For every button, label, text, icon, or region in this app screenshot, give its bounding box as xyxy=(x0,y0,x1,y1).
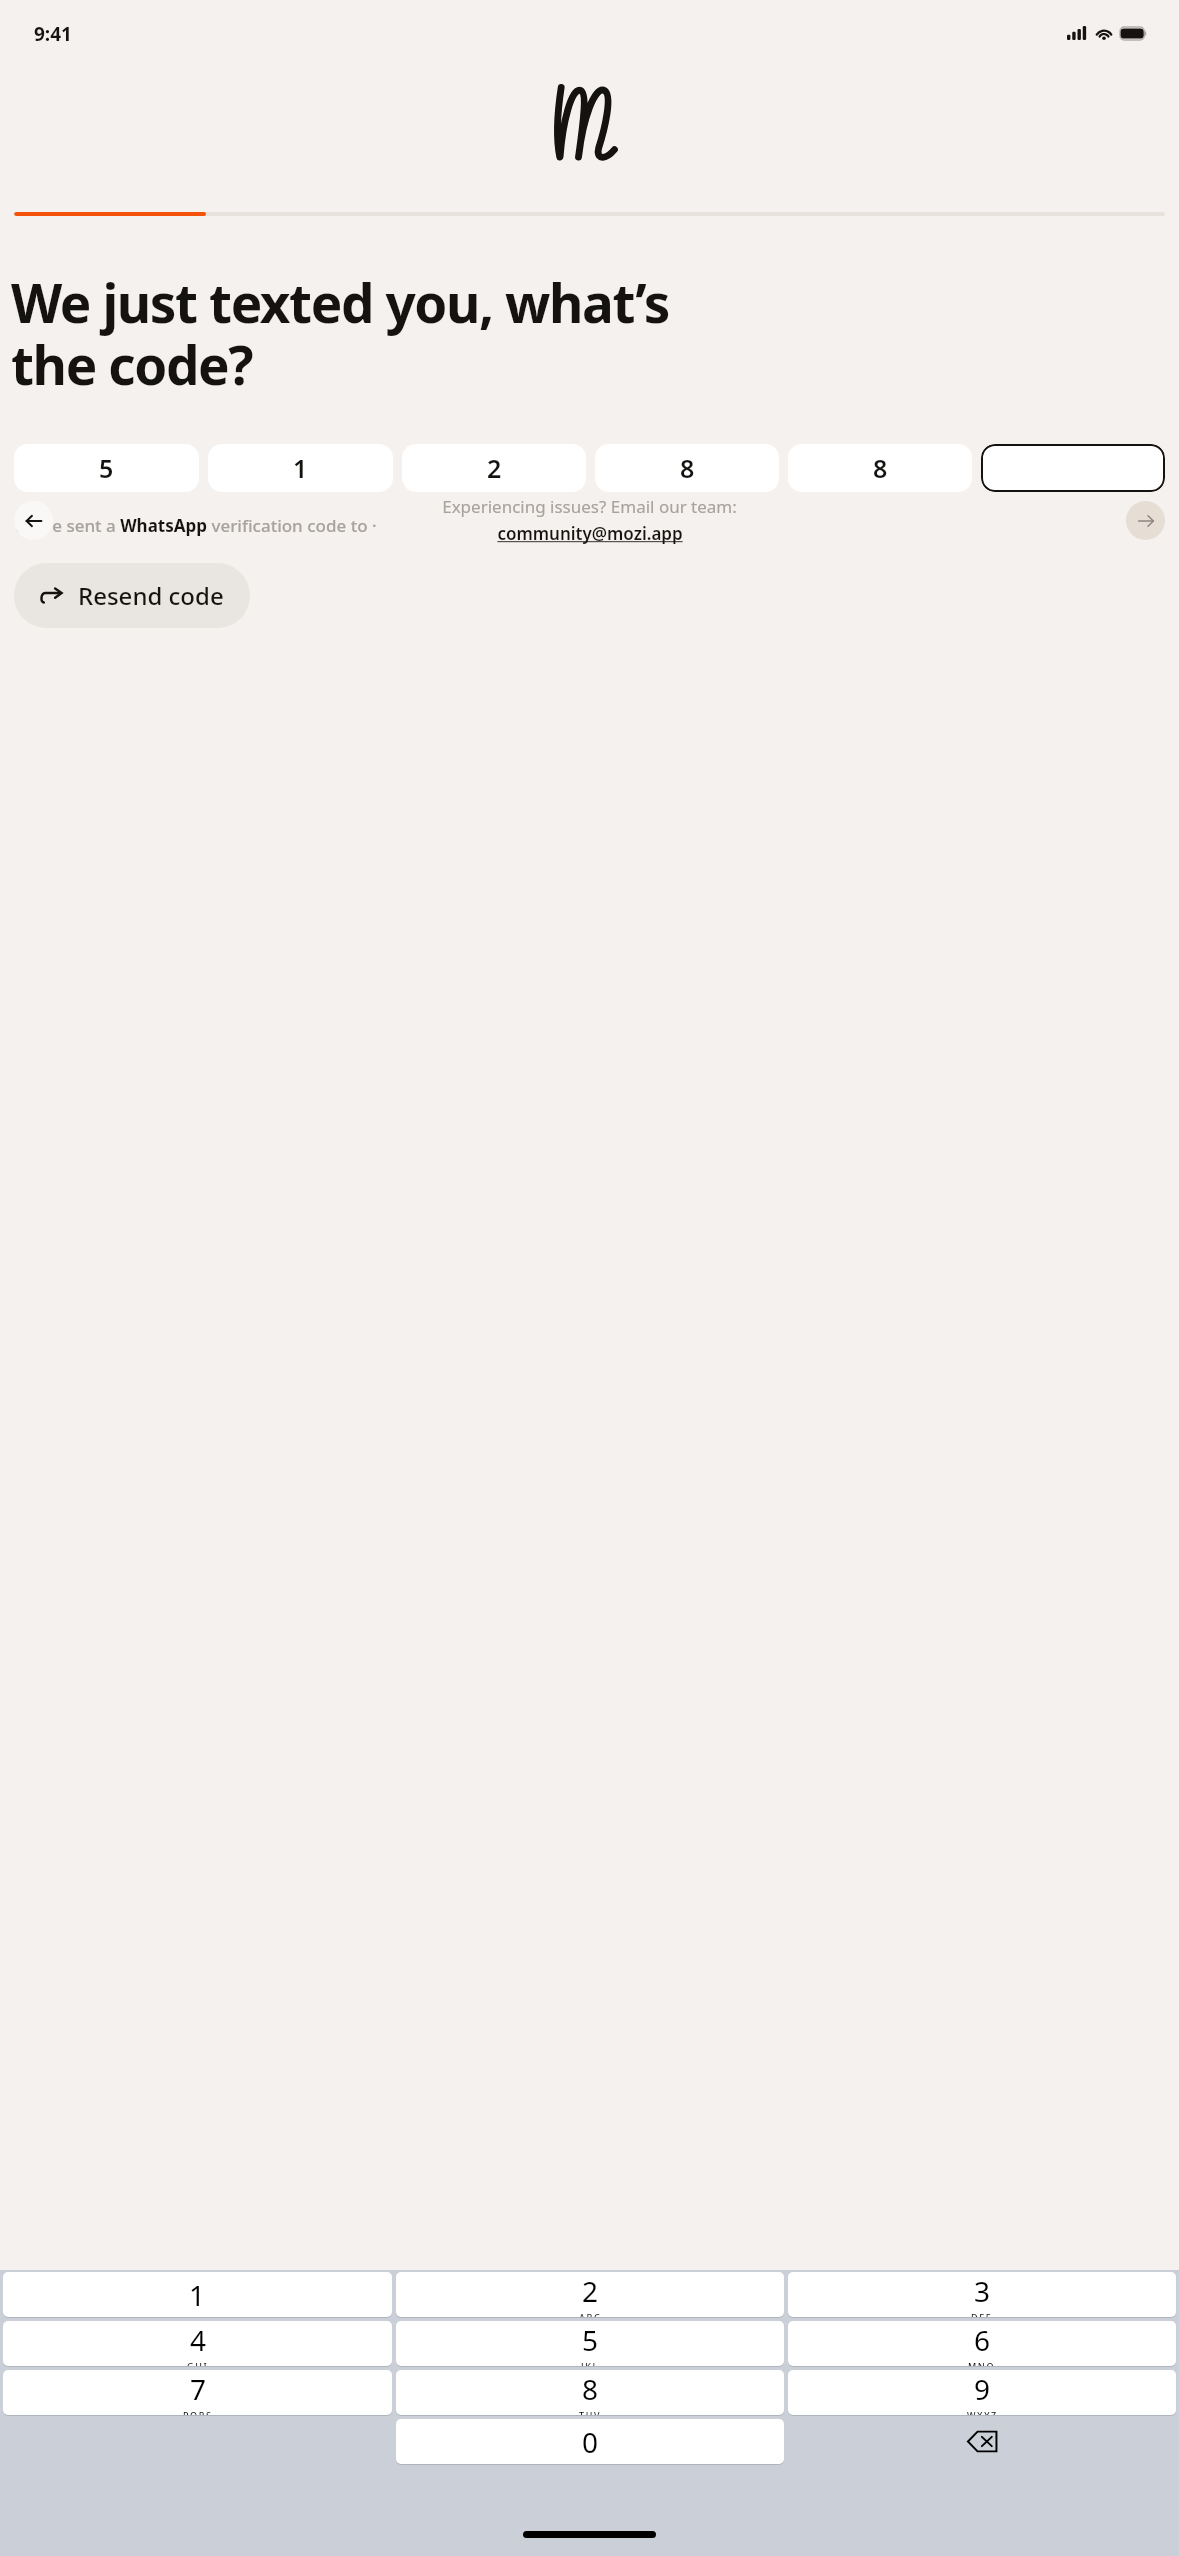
button[interactable]: 8 xyxy=(396,2370,784,2415)
staticText: 8 xyxy=(873,451,888,485)
button[interactable]: 5 xyxy=(14,444,199,492)
staticText: 2 xyxy=(582,2272,599,2310)
staticText: 4 xyxy=(190,2321,207,2359)
staticText: 9:41 xyxy=(34,21,72,47)
button[interactable]: 0 xyxy=(396,2419,784,2464)
button[interactable]: 4 xyxy=(3,2321,392,2366)
button[interactable]: 1 xyxy=(208,444,393,492)
staticText: TUV xyxy=(579,2409,602,2415)
staticText: ABC xyxy=(579,2311,602,2317)
staticText: 8 xyxy=(582,2370,599,2408)
button[interactable]: 1 xyxy=(3,2272,392,2317)
staticText: 0 xyxy=(582,2423,599,2461)
button[interactable]: 2 xyxy=(396,2272,784,2317)
button[interactable]: Back xyxy=(14,501,53,540)
button[interactable]: 6 xyxy=(788,2321,1176,2366)
staticText: PQRS xyxy=(183,2409,213,2415)
staticText: We just texted you, what’s the code? xyxy=(11,266,669,400)
button[interactable]: 2 xyxy=(402,444,586,492)
staticText: We've sent a WhatsApp verification code … xyxy=(14,514,377,537)
button[interactable] xyxy=(981,444,1165,492)
staticText: MNO xyxy=(968,2360,996,2366)
staticText: Resend code xyxy=(78,579,224,612)
button[interactable]: 3 xyxy=(788,2272,1176,2317)
staticText: 5 xyxy=(582,2321,599,2359)
button[interactable]: Continue xyxy=(1126,501,1165,540)
staticText: 7 xyxy=(190,2370,207,2408)
button[interactable]: 8 xyxy=(595,444,779,492)
button[interactable]: community@mozi.app xyxy=(497,522,683,545)
button[interactable]: 8 xyxy=(788,444,972,492)
staticText: DEF xyxy=(971,2311,993,2317)
button[interactable]: Backspace xyxy=(788,2419,1176,2464)
staticText: Experiencing issues? Email our team: xyxy=(442,495,737,518)
staticText: GHI xyxy=(187,2360,209,2366)
staticText: JKL xyxy=(581,2360,599,2366)
staticText: 2 xyxy=(487,451,502,485)
button[interactable]: 7 xyxy=(3,2370,392,2415)
staticText: 1 xyxy=(189,2276,206,2314)
staticText: 5 xyxy=(99,451,114,485)
button[interactable]: Resend code xyxy=(14,563,250,628)
button[interactable]: 9 xyxy=(788,2370,1176,2415)
staticText: 1 xyxy=(293,451,308,485)
staticText: 3 xyxy=(974,2272,991,2310)
staticText: WXYZ xyxy=(967,2409,998,2415)
staticText: 8 xyxy=(680,451,695,485)
button[interactable]: 5 xyxy=(396,2321,784,2366)
staticText: 9 xyxy=(974,2370,991,2408)
staticText: 6 xyxy=(974,2321,991,2359)
